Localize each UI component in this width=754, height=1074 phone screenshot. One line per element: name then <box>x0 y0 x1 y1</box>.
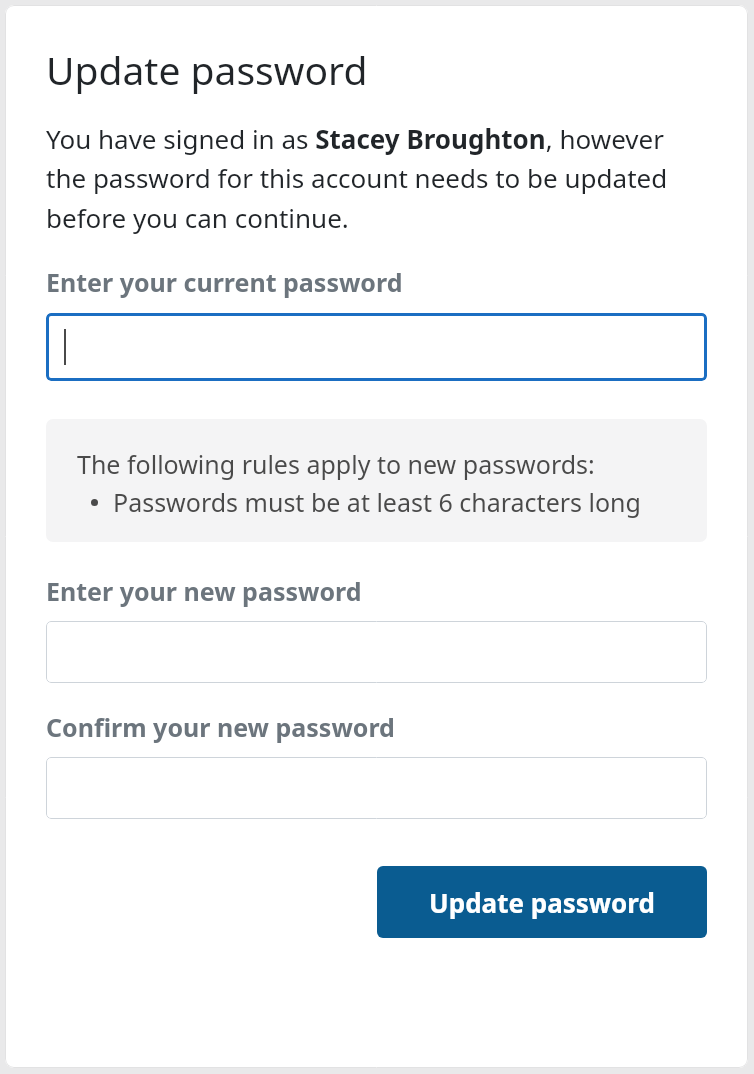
staticText: Enter your new password <box>46 574 362 608</box>
button[interactable]: Update password <box>377 866 707 938</box>
staticText: The following rules apply to new passwor… <box>77 447 595 481</box>
button[interactable] <box>46 313 707 381</box>
button[interactable]: Password input <box>46 757 707 819</box>
staticText: Update password <box>46 43 368 96</box>
staticText: You have signed in as Stacey Broughton, … <box>46 121 707 236</box>
staticText: Enter your current password <box>46 265 403 299</box>
button[interactable]: Password input <box>46 621 707 683</box>
staticText: Confirm your new password <box>46 710 395 744</box>
staticText: Update password <box>429 885 655 920</box>
staticText: Passwords must be at least 6 characters … <box>113 485 641 519</box>
